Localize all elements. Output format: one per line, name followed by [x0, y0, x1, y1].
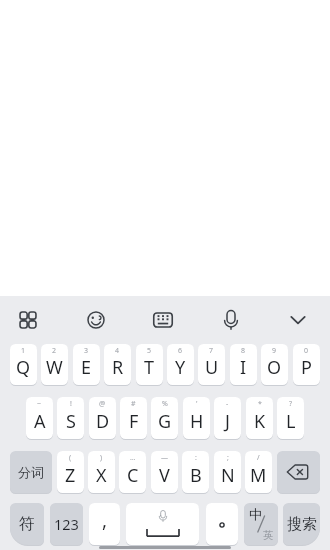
button[interactable]: 9 [261, 344, 288, 385]
staticText: E [81, 355, 92, 380]
button[interactable]: ? [277, 397, 304, 439]
staticText: ) [100, 453, 103, 463]
staticText: N [221, 463, 235, 488]
button[interactable]: 8 [230, 344, 257, 385]
staticText: ' [196, 399, 198, 409]
staticText: Q [16, 355, 31, 380]
staticText: 英 [263, 529, 274, 542]
staticText: S [66, 409, 76, 434]
staticText: ~ [37, 399, 42, 409]
staticText: C [127, 463, 139, 488]
button[interactable]: @ [89, 397, 116, 439]
staticText: 2 [52, 346, 57, 356]
button[interactable]: - [214, 397, 241, 439]
staticText: 4 [115, 346, 120, 356]
button[interactable]: 7 [198, 344, 225, 385]
button[interactable]: , [89, 503, 120, 545]
staticText: Z [65, 463, 76, 488]
staticText: ( [69, 453, 72, 463]
button[interactable] [265, 296, 330, 344]
staticText: * [258, 399, 262, 409]
staticText: G [158, 409, 172, 434]
button[interactable]: 3 [73, 344, 100, 385]
staticText: R [112, 355, 124, 380]
button[interactable]: 中 [244, 503, 278, 545]
staticText: V [159, 463, 170, 488]
staticText: - [226, 399, 229, 409]
button[interactable]: 分词 [10, 451, 52, 493]
button[interactable]: 搜索 [283, 503, 320, 545]
button[interactable]: 0 [293, 344, 320, 385]
staticText: Y [175, 355, 186, 380]
staticText: K [254, 409, 266, 434]
button[interactable]: 6 [167, 344, 194, 385]
staticText: / [257, 453, 260, 463]
button[interactable]: 1 [10, 344, 37, 385]
staticText: 0 [304, 346, 309, 356]
staticText: M [250, 463, 267, 488]
button[interactable]: 4 [104, 344, 131, 385]
staticText: 9 [272, 346, 277, 356]
button[interactable]: / [245, 451, 272, 493]
staticText: ; [227, 453, 229, 463]
staticText: 1 [21, 346, 26, 356]
button[interactable]: 5 [136, 344, 163, 385]
staticText: — [161, 453, 168, 463]
staticText: % [162, 399, 168, 409]
staticText: : [195, 453, 197, 463]
button[interactable]: ! [57, 397, 84, 439]
staticText: A [34, 409, 46, 434]
button[interactable]: ' [183, 397, 210, 439]
button[interactable]: ~ [26, 397, 53, 439]
staticText: H [190, 409, 204, 434]
button[interactable]: 符 [10, 503, 44, 545]
button[interactable] [206, 503, 238, 545]
button[interactable]: ( [57, 451, 84, 493]
staticText: 分词 [18, 464, 44, 480]
staticText: 搜索 [287, 515, 317, 534]
button[interactable] [130, 296, 196, 344]
staticText: I [240, 355, 247, 380]
staticText: … [130, 453, 136, 463]
staticText: P [301, 355, 312, 380]
staticText: 中 [249, 506, 263, 523]
button[interactable]: — [151, 451, 178, 493]
staticText: J [225, 409, 230, 434]
staticText: U [205, 355, 219, 380]
button[interactable]: * [246, 397, 273, 439]
staticText: , [102, 507, 108, 533]
button[interactable]: # [120, 397, 147, 439]
staticText: 123 [54, 514, 79, 534]
button[interactable]: : [182, 451, 209, 493]
staticText: # [131, 399, 136, 409]
button[interactable] [198, 296, 264, 344]
staticText: O [267, 355, 282, 380]
staticText: W [46, 355, 63, 380]
staticText: ? [289, 399, 293, 409]
button[interactable]: ; [214, 451, 241, 493]
button[interactable] [277, 451, 320, 493]
button[interactable] [126, 503, 199, 545]
button[interactable] [63, 296, 129, 344]
staticText: 8 [241, 346, 246, 356]
staticText: B [190, 463, 202, 488]
staticText: ! [70, 399, 72, 409]
staticText: 5 [147, 346, 152, 356]
staticText: X [96, 463, 107, 488]
staticText: L [286, 409, 296, 434]
staticText: 7 [209, 346, 214, 356]
button[interactable]: … [119, 451, 146, 493]
staticText: 6 [178, 346, 183, 356]
button[interactable]: ) [88, 451, 115, 493]
staticText: 符 [19, 514, 35, 534]
staticText: D [96, 409, 110, 434]
staticText: F [129, 409, 139, 434]
button[interactable]: % [151, 397, 178, 439]
button[interactable]: 2 [41, 344, 68, 385]
staticText: T [144, 355, 155, 380]
button[interactable]: 123 [50, 503, 83, 545]
staticText: 3 [84, 346, 89, 356]
staticText: @ [99, 399, 106, 409]
button[interactable] [0, 296, 61, 344]
